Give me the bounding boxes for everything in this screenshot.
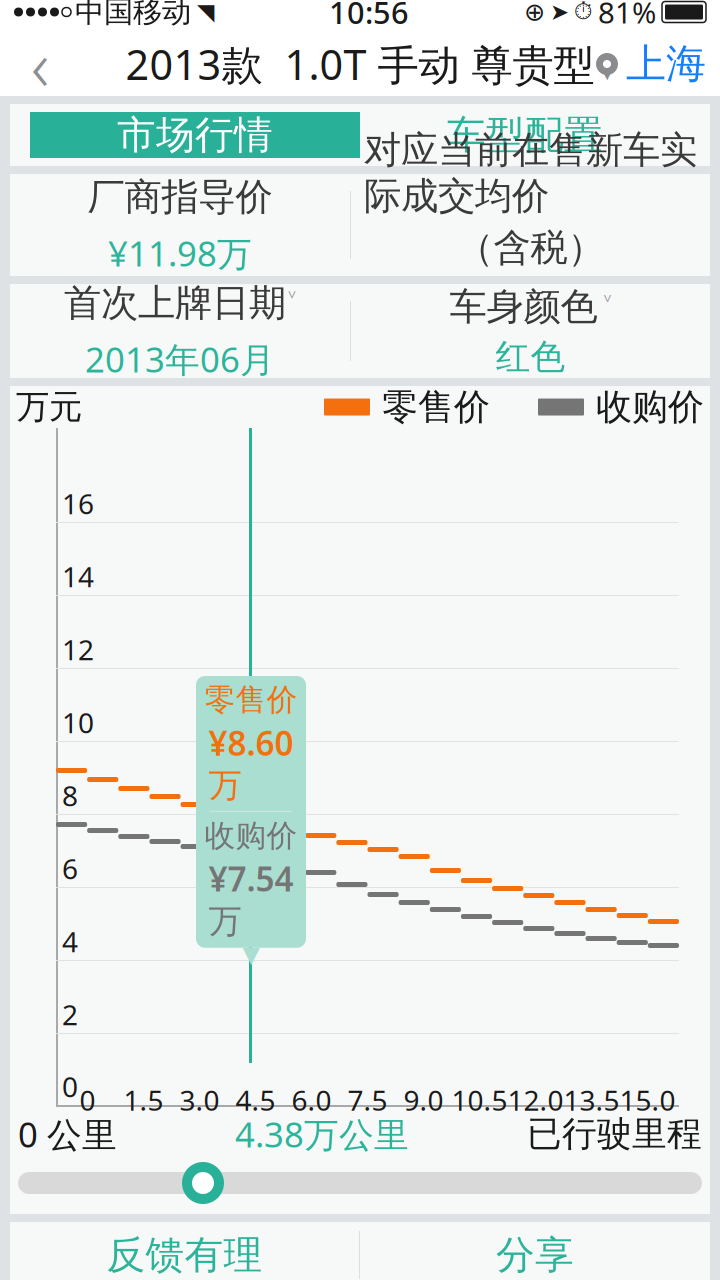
staticText: 2013年06月 xyxy=(85,336,275,382)
staticText: 9.0 xyxy=(403,1081,443,1119)
staticText: 车型配置 xyxy=(447,111,603,159)
staticText: 市场行情 xyxy=(117,111,273,159)
staticText: 收购价 xyxy=(596,385,704,429)
staticText: 已行驶里程 xyxy=(527,1113,702,1155)
staticText: 零售价 xyxy=(204,681,297,719)
staticText: ➤ xyxy=(550,0,569,25)
staticText: 81% xyxy=(598,0,656,31)
staticText: 1.5 xyxy=(123,1081,163,1119)
staticText: 收购价 xyxy=(204,817,297,855)
staticText: 0 xyxy=(79,1081,95,1119)
staticText: 4.5 xyxy=(235,1081,275,1119)
staticText: ¥11.98万 xyxy=(108,230,252,276)
staticText: 8 xyxy=(62,777,78,814)
staticText: 6 xyxy=(62,850,78,887)
staticText: 零售价 xyxy=(382,385,490,429)
staticText: 对应当前在售新车实际成交均价 xyxy=(364,127,697,219)
staticText: 10 xyxy=(62,704,94,741)
staticText: ▾ xyxy=(242,934,259,973)
staticText: 0 公里 xyxy=(18,1111,117,1157)
staticText: 16 xyxy=(62,485,94,522)
staticText: 0 xyxy=(62,1068,78,1105)
staticText: ˅ xyxy=(603,287,611,326)
staticText: 14 xyxy=(62,558,94,595)
staticText: 2013款 1.0T 手动 尊贵型 xyxy=(125,37,594,91)
staticText: ˅ xyxy=(288,283,296,322)
staticText: 13.5 xyxy=(563,1081,619,1119)
staticText: 上海 xyxy=(626,39,706,88)
staticText: 10:56 xyxy=(329,0,409,32)
staticText: 万元 xyxy=(16,386,82,427)
staticText: ‹ xyxy=(31,18,49,110)
button[interactable]: 分享 xyxy=(360,1222,710,1280)
staticText: 6.0 xyxy=(291,1081,331,1119)
staticText: 10.5 xyxy=(451,1081,507,1119)
staticText: ¥7.54万 xyxy=(208,856,293,942)
staticText: 首次上牌日期 xyxy=(64,280,286,326)
staticText: ¥8.60万 xyxy=(208,721,293,806)
staticText: 厂商指导价 xyxy=(87,174,272,220)
staticText: ⏱ xyxy=(574,0,593,24)
button[interactable]: 市场行情 xyxy=(30,112,360,158)
staticText: 中国移动 xyxy=(75,0,191,30)
staticText: 反馈有理 xyxy=(106,1231,262,1279)
staticText: 2 xyxy=(62,996,78,1033)
staticText: 车身颜色 xyxy=(449,284,597,330)
staticText: 3.0 xyxy=(179,1081,219,1119)
staticText: ¥11.94万 xyxy=(458,277,602,323)
staticText: （含税） xyxy=(456,225,604,271)
button[interactable]: 反馈有理 xyxy=(10,1222,359,1280)
staticText: 7.5 xyxy=(347,1081,387,1119)
staticText: 4.38万公里 xyxy=(235,1111,409,1157)
staticText: ◥ xyxy=(197,0,214,25)
staticText: 4 xyxy=(62,923,78,960)
staticText: ▾ xyxy=(602,63,611,85)
staticText: 12 xyxy=(62,631,94,668)
staticText: 分享 xyxy=(496,1231,574,1279)
staticText: 15.0 xyxy=(619,1081,675,1119)
staticText: 红色 xyxy=(495,336,565,378)
staticText: ⊕ xyxy=(524,0,545,26)
button[interactable]: Back xyxy=(0,32,80,96)
staticText: 12.0 xyxy=(507,1081,563,1119)
button[interactable]: ▾ xyxy=(582,32,720,96)
button[interactable]: 车型配置 xyxy=(360,112,690,158)
